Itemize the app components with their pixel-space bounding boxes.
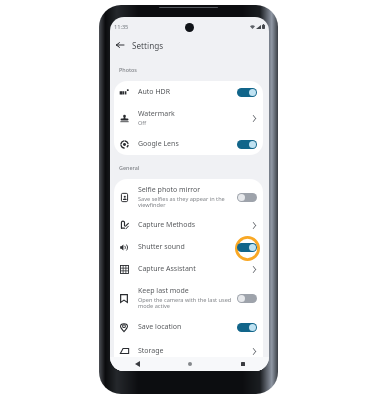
staticText: Storage [138,346,164,356]
staticText: 11:35 [114,23,129,31]
button[interactable]: Watermark [114,103,263,133]
staticText: Keep last mode [138,286,189,296]
button[interactable]: Selfie photo mirror [114,179,263,214]
staticText: Capture Assistant [138,264,196,274]
button[interactable]: Back [112,37,128,53]
staticText: Auto HDR [138,87,171,97]
staticText: Open the camera with the last used mode … [138,296,232,310]
staticText: Shutter sound [138,242,185,252]
button[interactable]: Storage [114,339,263,362]
staticText: Save location [138,322,182,332]
button[interactable]: Save location [114,315,263,339]
staticText: Watermark [138,109,175,119]
staticText: Selfie photo mirror [138,185,201,195]
button[interactable]: Toggle on [237,88,257,97]
button[interactable]: Toggle off [237,294,257,303]
button[interactable]: Toggle on [237,140,257,149]
staticText: Photos [119,66,137,73]
staticText: Settings [132,40,164,51]
staticText: Google Lens [138,139,179,149]
button[interactable]: Keep last mode [114,280,263,315]
staticText: Off [138,119,147,127]
button[interactable]: Toggle on [237,323,257,332]
button[interactable]: Back [130,357,144,371]
button[interactable]: Toggle off [237,193,257,202]
button[interactable]: Toggle on [237,243,257,252]
staticText: General [119,164,140,171]
button[interactable]: Shutter sound [114,236,263,258]
button[interactable]: Capture Assistant [114,258,263,280]
staticText: Capture Methods [138,220,196,230]
button[interactable]: Google Lens [114,133,263,155]
button[interactable]: Capture Methods [114,214,263,236]
button[interactable]: Auto HDR [114,81,263,103]
staticText: Save selfies as they appear in the viewf… [138,195,232,209]
button[interactable]: Recent apps [236,357,250,371]
button[interactable]: Home [183,357,197,371]
